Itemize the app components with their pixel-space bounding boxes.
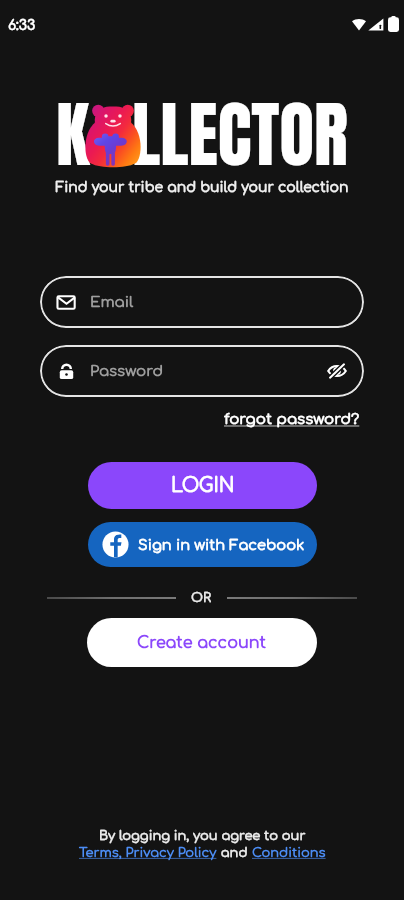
staticText: 6:33 xyxy=(8,18,36,34)
staticText: Find your tribe and build your collectio… xyxy=(0,180,404,196)
staticText: Terms, Privacy Policy xyxy=(79,846,217,860)
staticText: K xyxy=(56,81,90,188)
staticText: Email xyxy=(90,294,134,311)
staticText: Create account xyxy=(137,634,267,652)
staticText: Sign in with Facebook xyxy=(138,537,305,553)
button[interactable]: Conditions xyxy=(252,846,326,860)
button[interactable]: Email xyxy=(40,276,364,328)
staticText: forgot password? xyxy=(224,411,360,428)
button[interactable]: Show password xyxy=(324,358,350,384)
staticText: Password xyxy=(90,363,164,380)
button[interactable]: LOGIN xyxy=(88,462,317,509)
staticText: Conditions xyxy=(252,846,326,860)
staticText: LOGIN xyxy=(171,475,235,496)
button[interactable]: forgot password? xyxy=(222,409,362,430)
staticText: By logging in, you agree to our xyxy=(99,829,306,843)
button[interactable]: Password xyxy=(40,345,364,397)
staticText: and xyxy=(217,846,252,860)
staticText: OR xyxy=(191,591,212,605)
button[interactable]: Sign in with Facebook xyxy=(88,522,317,567)
staticText: LLECTOR xyxy=(132,81,348,188)
button[interactable]: Create account xyxy=(87,618,317,667)
button[interactable]: Terms, Privacy Policy xyxy=(79,846,217,860)
